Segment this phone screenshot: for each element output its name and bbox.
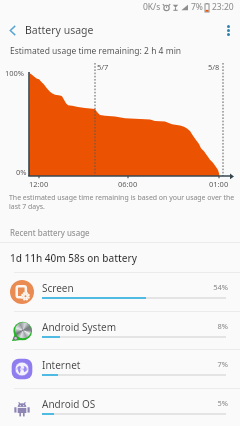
staticText: 1d 11h 40m 58s on battery: [10, 251, 138, 265]
staticText: 06:00: [118, 179, 138, 189]
staticText: The estimated usage time remaining is ba…: [9, 193, 235, 211]
button[interactable]: Screen: [0, 272, 240, 311]
staticText: 5/7: [97, 62, 109, 72]
button[interactable]: Navigate up: [0, 18, 24, 42]
button[interactable]: Internet: [0, 349, 240, 388]
staticText: 7%: [204, 359, 228, 369]
button[interactable]: More options: [216, 18, 240, 42]
staticText: Estimated usage time remaining: 2 h 4 mi…: [10, 45, 182, 57]
staticText: 5%: [204, 398, 228, 408]
staticText: Recent battery usage: [10, 227, 90, 238]
staticText: 100%: [5, 68, 25, 78]
staticText: 5/8: [208, 62, 220, 72]
staticText: 0%: [16, 167, 27, 177]
staticText: 54%: [204, 282, 228, 292]
staticText: Android OS: [42, 397, 96, 411]
button[interactable]: Android System: [0, 311, 240, 350]
staticText: Internet: [42, 358, 81, 372]
staticText: 01:00: [209, 179, 229, 189]
staticText: Battery usage: [25, 23, 94, 37]
staticText: 12:00: [29, 179, 49, 189]
staticText: 23:20: [212, 1, 234, 13]
staticText: Screen: [42, 281, 74, 295]
staticText: 7%: [191, 1, 203, 13]
staticText: Android System: [42, 320, 117, 334]
staticText: 0K/s: [143, 1, 161, 13]
button[interactable]: Android OS: [0, 388, 240, 426]
staticText: 8%: [204, 321, 228, 331]
